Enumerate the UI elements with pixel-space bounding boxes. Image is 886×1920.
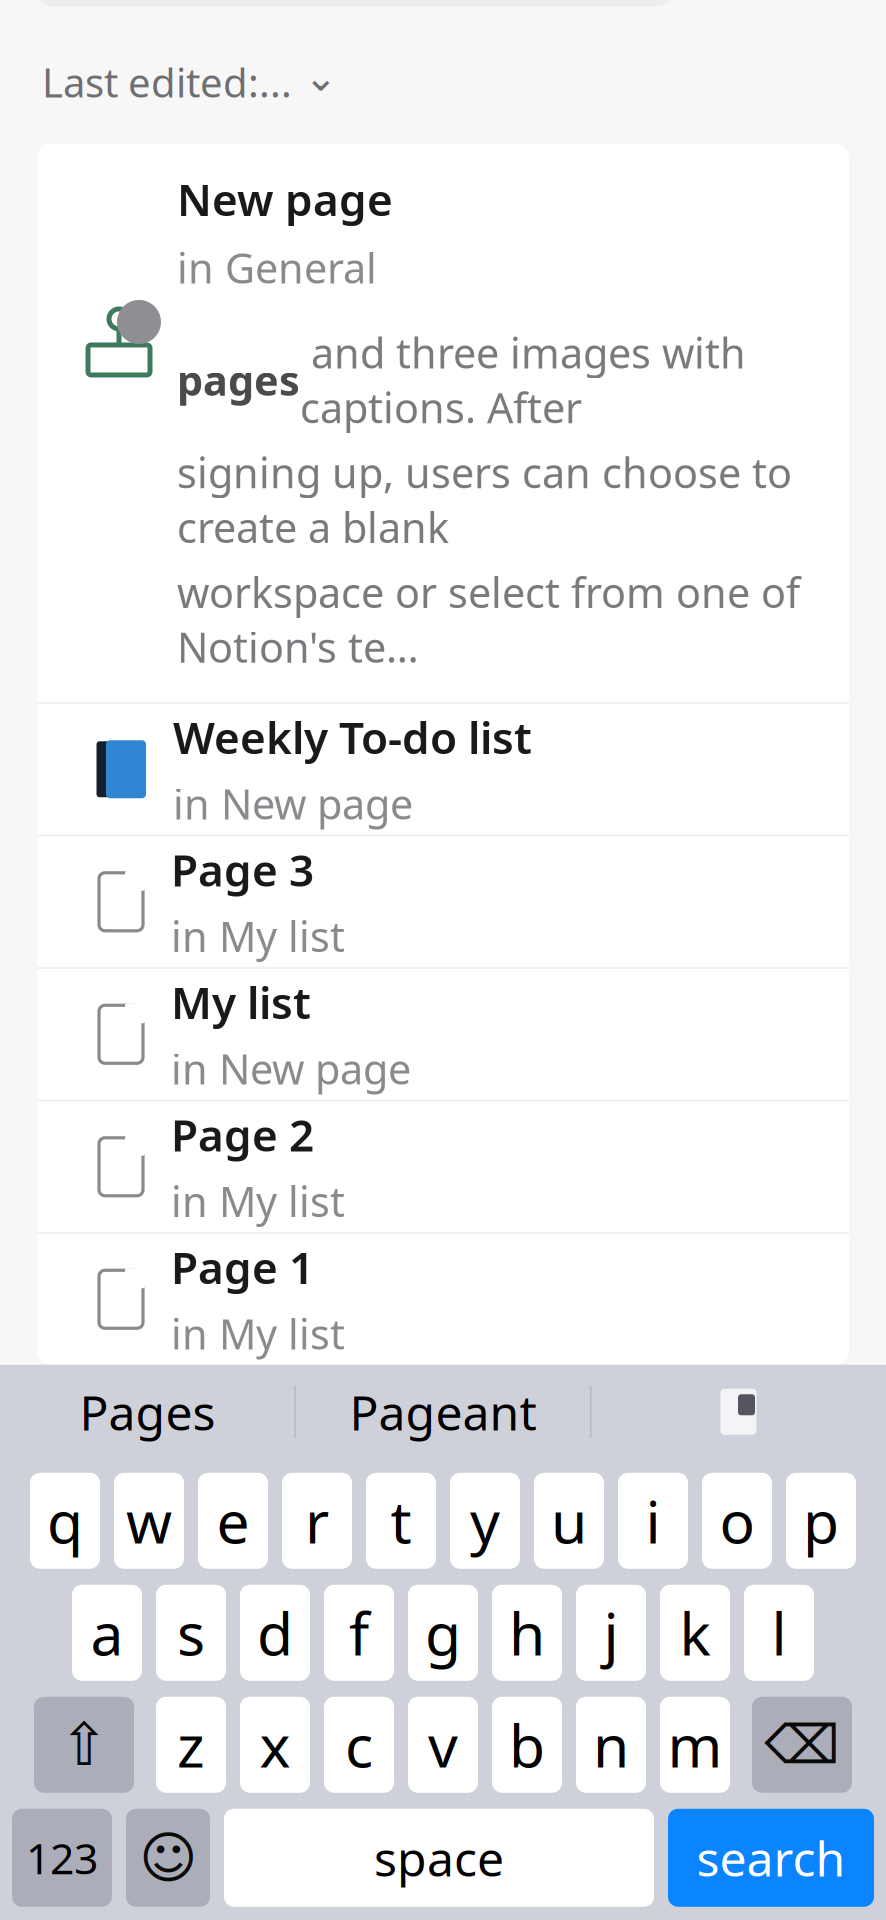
button[interactable]: o <box>702 1473 772 1569</box>
button[interactable]: New page <box>37 144 849 702</box>
button[interactable]: g <box>408 1585 478 1681</box>
staticText: signing up, users can choose to create a… <box>177 445 792 554</box>
button[interactable]: u <box>534 1473 604 1569</box>
button[interactable]: n <box>576 1697 646 1793</box>
button[interactable]: c <box>324 1697 394 1793</box>
staticText: q <box>47 1482 83 1560</box>
staticText: New page <box>177 170 393 228</box>
staticText: g <box>425 1594 461 1672</box>
button[interactable]: e <box>198 1473 268 1569</box>
staticText: k <box>679 1594 710 1672</box>
button[interactable]: p <box>786 1473 856 1569</box>
staticText: in My list <box>171 1306 345 1361</box>
button[interactable]: Page 2 <box>37 1101 849 1232</box>
button[interactable]: y <box>450 1473 520 1569</box>
button[interactable]: f <box>324 1585 394 1681</box>
button[interactable]: i <box>618 1473 688 1569</box>
button[interactable]: Paste document <box>591 1369 885 1455</box>
button[interactable]: j <box>576 1585 646 1681</box>
button[interactable]: d <box>240 1585 310 1681</box>
button[interactable]: r <box>282 1473 352 1569</box>
staticText: j <box>603 1594 618 1672</box>
staticText: d <box>257 1594 293 1672</box>
staticText: z <box>177 1706 205 1784</box>
button[interactable]: Shift <box>34 1697 134 1793</box>
staticText: f <box>349 1594 369 1672</box>
button[interactable]: 123 <box>12 1809 112 1907</box>
staticText: in My list <box>171 908 345 963</box>
staticText: in General <box>177 240 377 295</box>
staticText: pages <box>177 352 300 407</box>
staticText: e <box>216 1482 249 1560</box>
staticText: in My list <box>171 1173 345 1228</box>
staticText: x <box>259 1706 290 1784</box>
staticText: t <box>390 1482 411 1560</box>
staticText: n <box>593 1706 629 1784</box>
staticText: Pages <box>79 1380 215 1444</box>
button[interactable]: v <box>408 1697 478 1793</box>
staticText: ☺ <box>139 1826 197 1890</box>
button[interactable]: Pages <box>0 1369 294 1455</box>
staticText: a <box>90 1594 123 1672</box>
staticText: s <box>177 1594 205 1672</box>
staticText: ⌫ <box>764 1714 839 1775</box>
staticText: ⇧ <box>59 1711 108 1778</box>
button[interactable]: b <box>492 1697 562 1793</box>
staticText: i <box>645 1482 660 1560</box>
staticText: h <box>509 1594 545 1672</box>
button[interactable]: s <box>156 1585 226 1681</box>
button[interactable]: l <box>744 1585 814 1681</box>
staticText: Page 3 <box>171 840 314 898</box>
button[interactable]: z <box>156 1697 226 1793</box>
staticText: r <box>305 1482 329 1560</box>
button[interactable]: q <box>30 1473 100 1569</box>
button[interactable]: Page 1 <box>37 1234 849 1365</box>
staticText: Pageant <box>349 1380 536 1444</box>
button[interactable]: Last edited:... <box>42 46 338 118</box>
staticText: b <box>509 1706 545 1784</box>
button[interactable]: search <box>668 1809 874 1907</box>
staticText: in New page <box>171 1041 411 1096</box>
staticText: Weekly To-do list <box>173 708 532 766</box>
staticText: p <box>803 1482 839 1560</box>
button[interactable]: m <box>660 1697 730 1793</box>
staticText: search <box>696 1826 845 1890</box>
button[interactable]: a <box>72 1585 142 1681</box>
staticText: Page 1 <box>171 1238 314 1296</box>
staticText: u <box>551 1482 587 1560</box>
button[interactable]: h <box>492 1585 562 1681</box>
staticText: m <box>667 1706 722 1784</box>
staticText: in New page <box>173 776 413 831</box>
button[interactable]: Weekly To-do list <box>37 704 849 835</box>
button[interactable]: k <box>660 1585 730 1681</box>
staticText: My list <box>171 973 311 1031</box>
staticText: ⌄ <box>304 54 338 100</box>
button[interactable]: Page 3 <box>37 836 849 967</box>
staticText: space <box>374 1826 504 1890</box>
staticText: and three images with captions. After <box>300 325 746 435</box>
button[interactable]: w <box>114 1473 184 1569</box>
staticText: workspace or select from one of Notion's… <box>177 564 800 674</box>
staticText: 123 <box>26 1829 98 1886</box>
button[interactable]: My list <box>37 969 849 1100</box>
staticText: Last edited:... <box>42 55 292 108</box>
button[interactable]: t <box>366 1473 436 1569</box>
staticText: c <box>345 1706 373 1784</box>
button[interactable]: x <box>240 1697 310 1793</box>
staticText: y <box>470 1482 500 1560</box>
button[interactable]: Delete <box>752 1697 852 1793</box>
staticText: v <box>428 1706 458 1784</box>
button[interactable]: Emoji <box>126 1809 210 1907</box>
button[interactable]: space <box>224 1809 654 1907</box>
button[interactable]: Pageant <box>296 1369 590 1455</box>
staticText: l <box>771 1594 786 1672</box>
staticText: o <box>719 1482 754 1560</box>
staticText: Page 2 <box>171 1105 314 1163</box>
staticText: w <box>126 1482 172 1560</box>
